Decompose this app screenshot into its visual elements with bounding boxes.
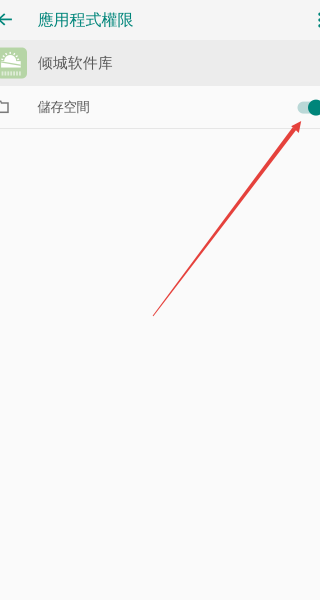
button[interactable]: 儲存空間	[0, 86, 320, 128]
staticText: 倾城软件库	[38, 54, 113, 72]
button[interactable]: More options	[318, 0, 320, 40]
button[interactable]: Back	[0, 0, 13, 40]
staticText: 應用程式權限	[37, 10, 133, 30]
button[interactable]: 應用程式權限	[13, 0, 166, 40]
staticText: 儲存空間	[37, 99, 89, 115]
